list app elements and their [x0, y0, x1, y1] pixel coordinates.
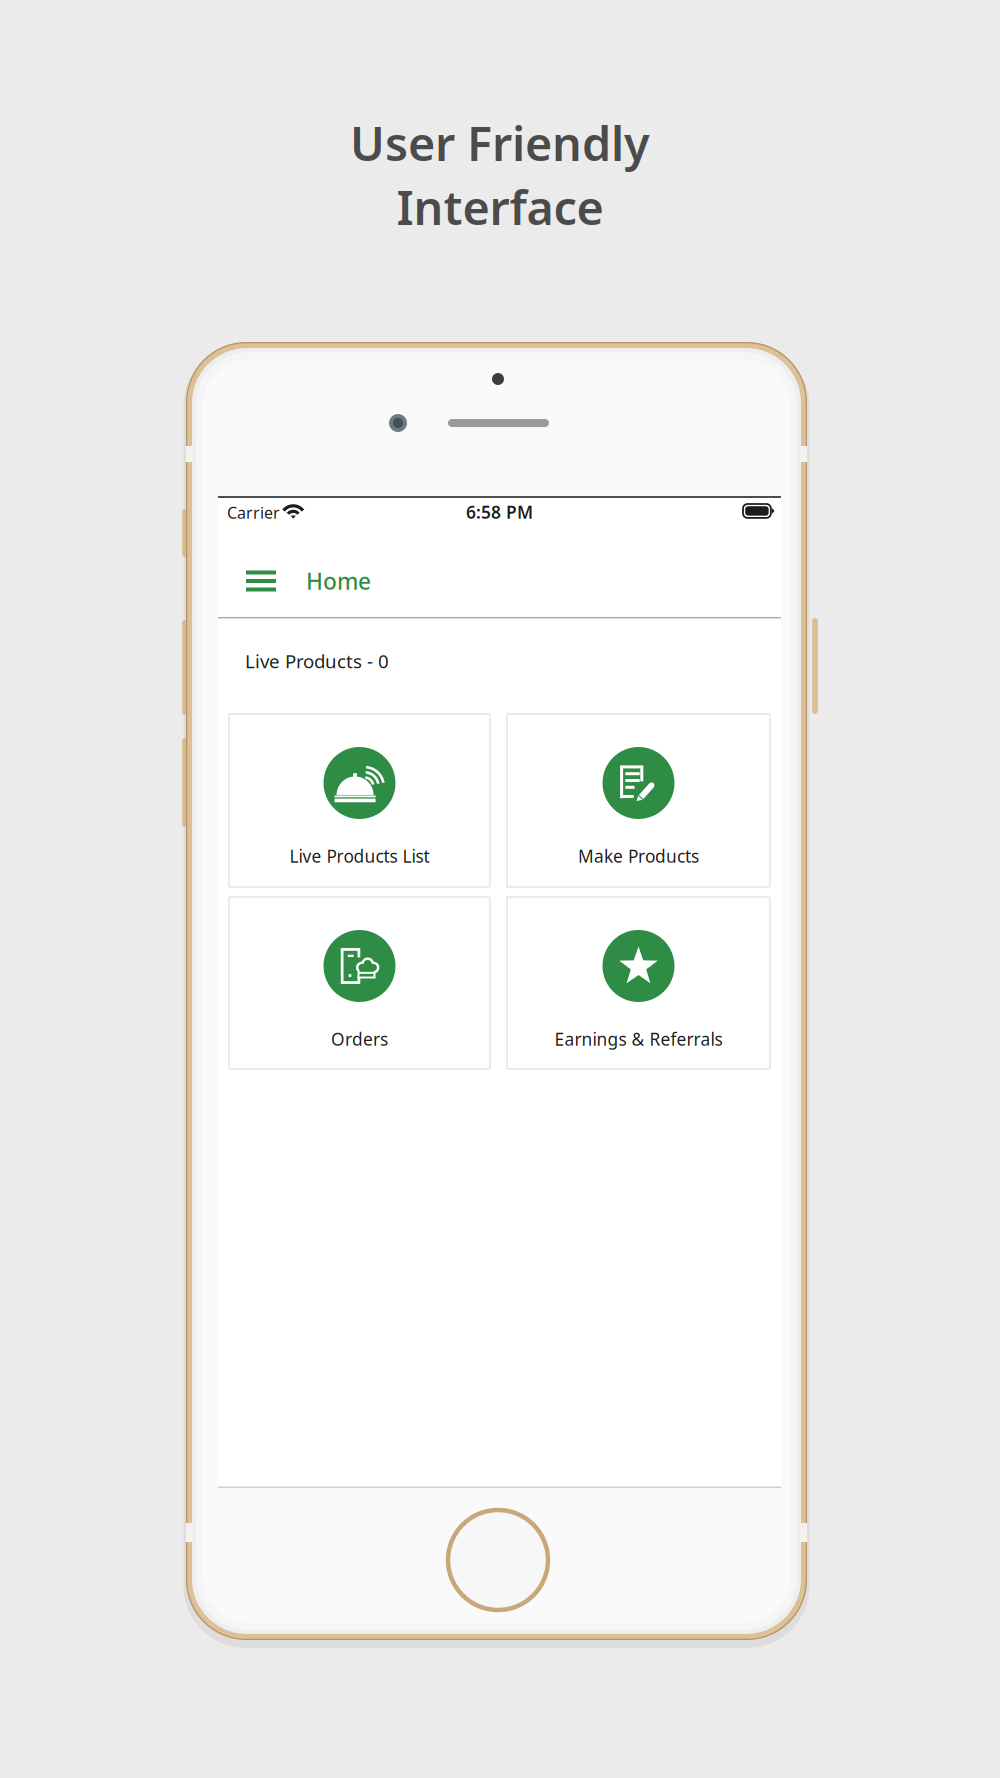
button[interactable]: Menu — [235, 555, 287, 607]
staticText: Live Products - 0 — [245, 649, 389, 673]
staticText: User Friendly — [350, 112, 650, 174]
button[interactable]: Home — [306, 564, 396, 598]
staticText: Earnings & Referrals — [554, 1027, 722, 1050]
staticText: Make Products — [578, 844, 699, 867]
staticText: Orders — [331, 1027, 388, 1050]
button[interactable]: Make Products — [507, 714, 770, 887]
button[interactable]: Earnings & Referrals — [507, 897, 770, 1069]
staticText: Home — [306, 566, 371, 596]
button[interactable]: Live Products List — [229, 714, 490, 887]
staticText: Interface — [396, 176, 603, 238]
staticText: 6:58 PM — [466, 500, 533, 523]
staticText: Carrier — [227, 502, 280, 523]
staticText: Live Products List — [289, 844, 429, 867]
button[interactable]: Orders — [229, 897, 490, 1069]
